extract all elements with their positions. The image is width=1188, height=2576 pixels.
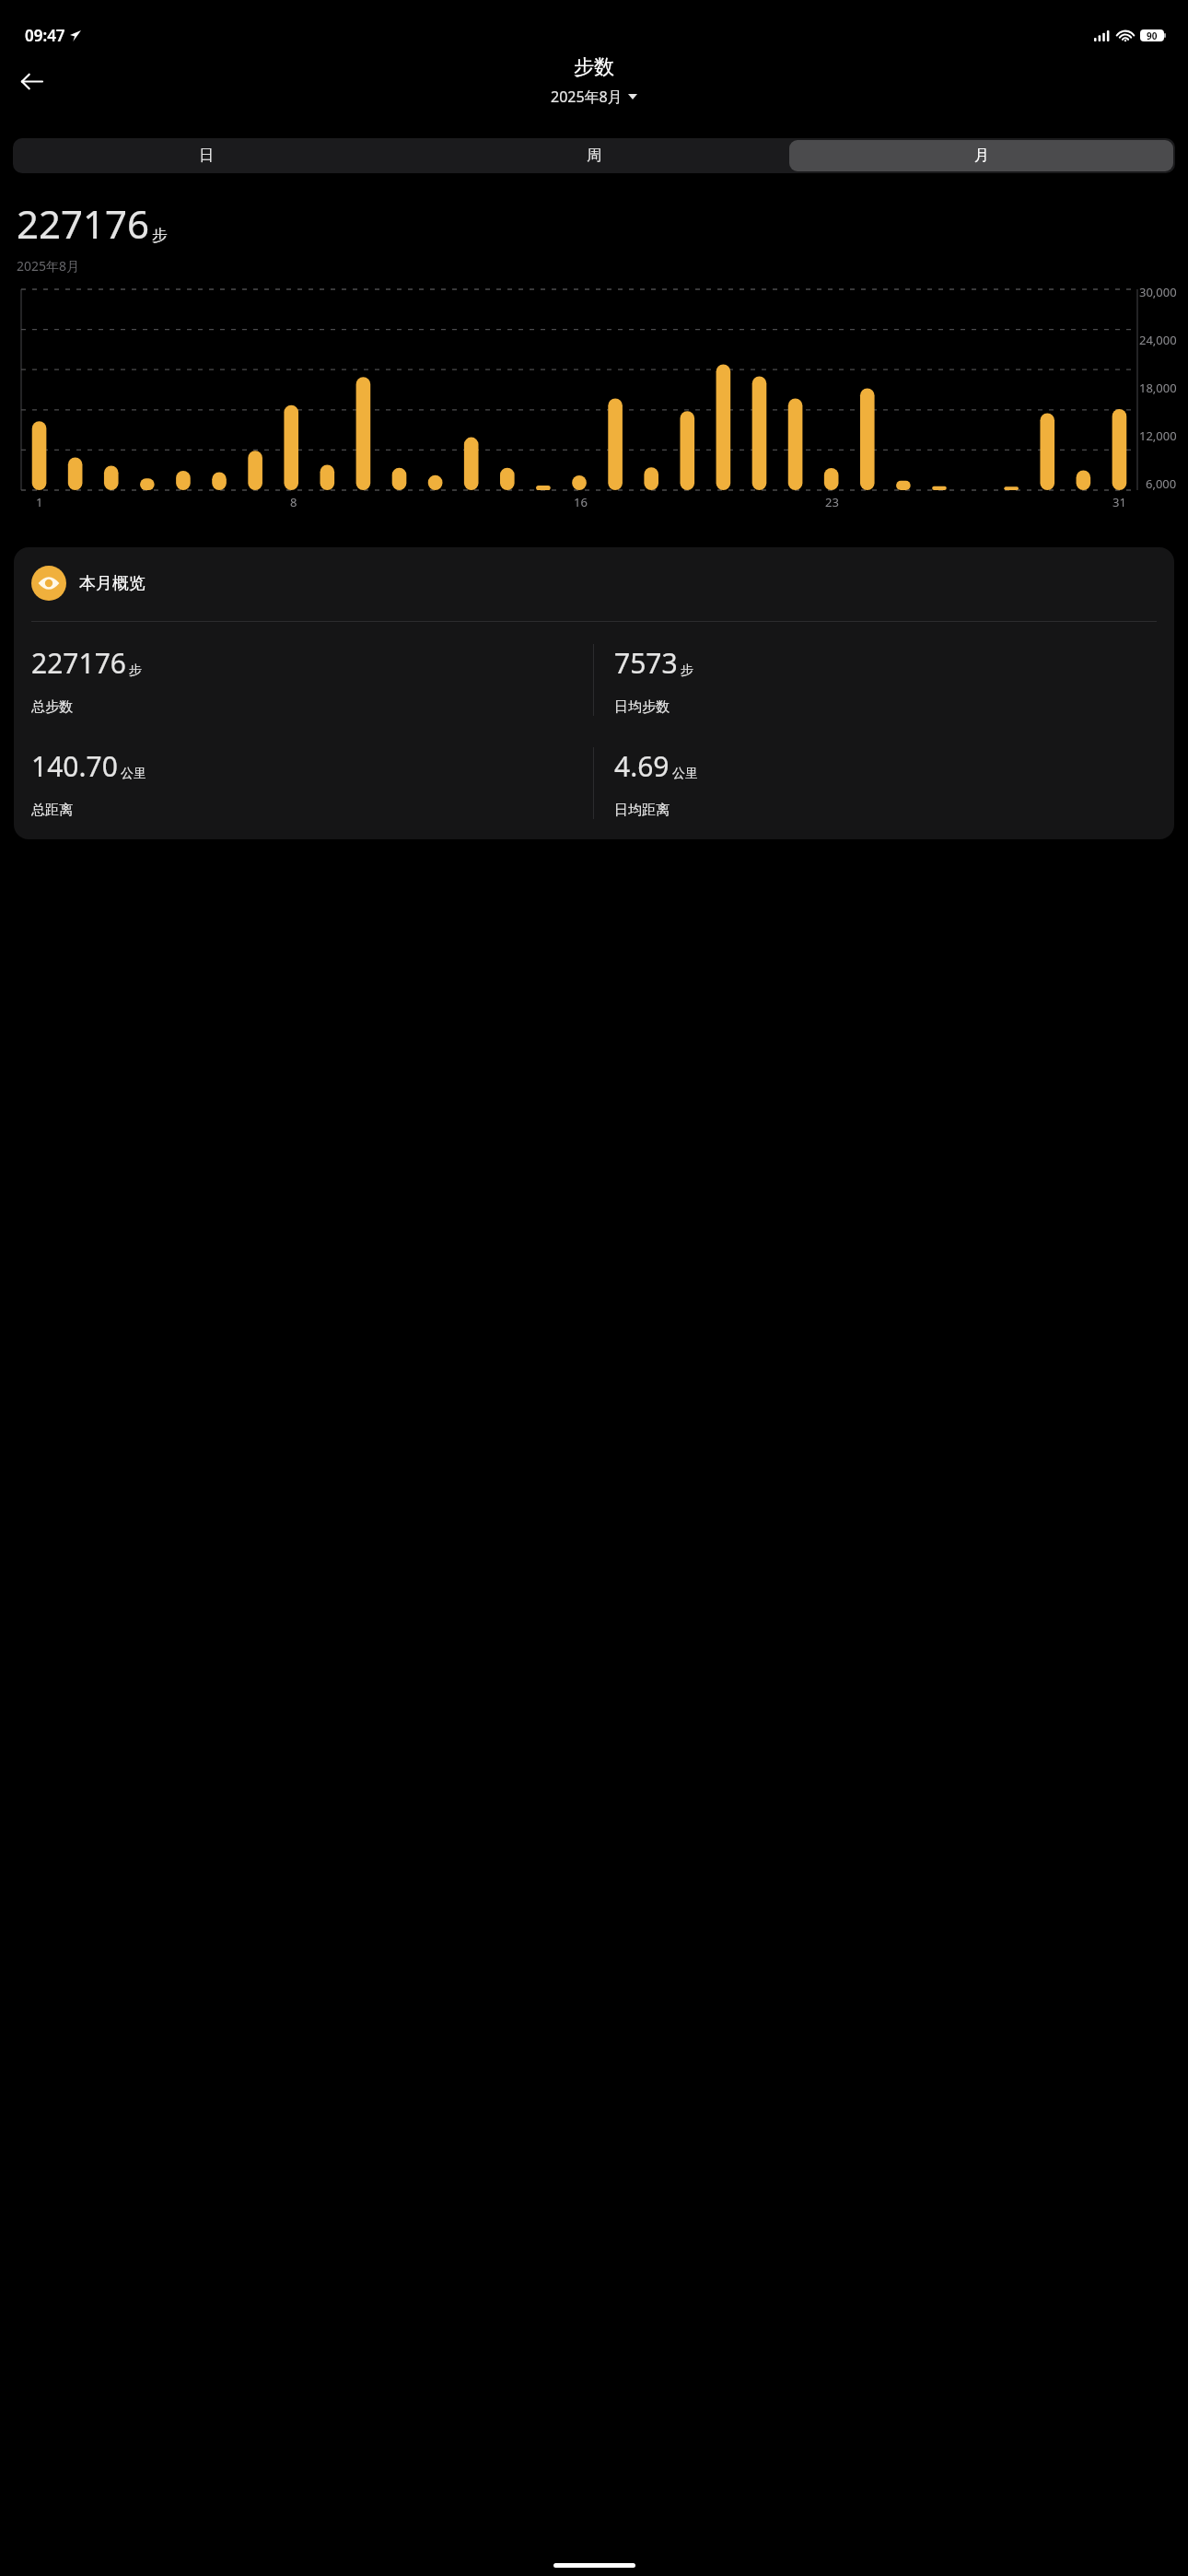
staticText: 18,000 (1139, 380, 1177, 396)
staticText: 2025年8月 (551, 87, 623, 107)
staticText: 6,000 (1146, 475, 1177, 492)
staticText: 日均步数 (614, 698, 670, 716)
staticText: 7573 (614, 644, 678, 682)
staticText: 本月概览 (79, 573, 146, 594)
staticText: 16 (574, 494, 588, 510)
staticText: 月 (974, 146, 989, 165)
staticText: 30,000 (1139, 284, 1177, 300)
button[interactable]: 周 (402, 140, 786, 171)
staticText: 总距离 (31, 802, 73, 819)
staticText: 日 (199, 146, 214, 165)
staticText: 90 (1147, 29, 1158, 41)
staticText: 步 (152, 226, 168, 245)
staticText: 12,000 (1139, 427, 1177, 444)
staticText: 140.70 (31, 747, 118, 785)
staticText: 周 (587, 146, 601, 165)
button[interactable]: Back (11, 61, 52, 101)
button[interactable]: 本月概览 (14, 547, 1174, 839)
staticText: 4.69 (614, 747, 670, 785)
staticText: 1 (36, 494, 43, 510)
staticText: 23 (825, 494, 839, 510)
staticText: 公里 (672, 766, 698, 782)
staticText: 步数 (574, 54, 614, 80)
staticText: 09:47 (25, 25, 65, 46)
button[interactable]: 日 (15, 140, 398, 171)
staticText: 总步数 (31, 698, 73, 716)
staticText: 227176 (31, 644, 126, 682)
button[interactable]: 月 (789, 140, 1173, 171)
staticText: 31 (1112, 494, 1126, 510)
staticText: 日均距离 (614, 802, 670, 819)
staticText: 24,000 (1139, 332, 1177, 348)
staticText: 8 (290, 494, 297, 510)
staticText: 227176 (17, 197, 150, 250)
staticText: 2025年8月 (17, 257, 80, 275)
staticText: 公里 (121, 766, 146, 782)
staticText: 步 (681, 662, 693, 679)
button[interactable]: 2025年8月 (545, 85, 643, 109)
staticText: 步 (129, 662, 142, 679)
